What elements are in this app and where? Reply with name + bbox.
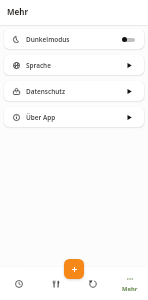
- staticText: Mehr: [122, 285, 138, 293]
- staticText: Sprache: [26, 61, 51, 70]
- button[interactable]: Über App: [4, 107, 144, 127]
- button[interactable]: Verlauf: [74, 267, 111, 300]
- button[interactable]: Restaurants: [37, 267, 74, 300]
- staticText: Datenschutz: [26, 87, 66, 96]
- button[interactable]: Start: [0, 267, 37, 300]
- button[interactable]: Sprache: [4, 55, 144, 75]
- staticText: Dunkelmodus: [26, 35, 70, 44]
- button[interactable]: Mehr: [111, 267, 148, 300]
- button[interactable]: Dunkelmodus: [4, 29, 144, 49]
- button[interactable]: Hinzufügen: [64, 259, 84, 279]
- staticText: Über App: [26, 113, 56, 122]
- staticText: Mehr: [7, 6, 29, 17]
- button[interactable]: Datenschutz: [4, 81, 144, 101]
